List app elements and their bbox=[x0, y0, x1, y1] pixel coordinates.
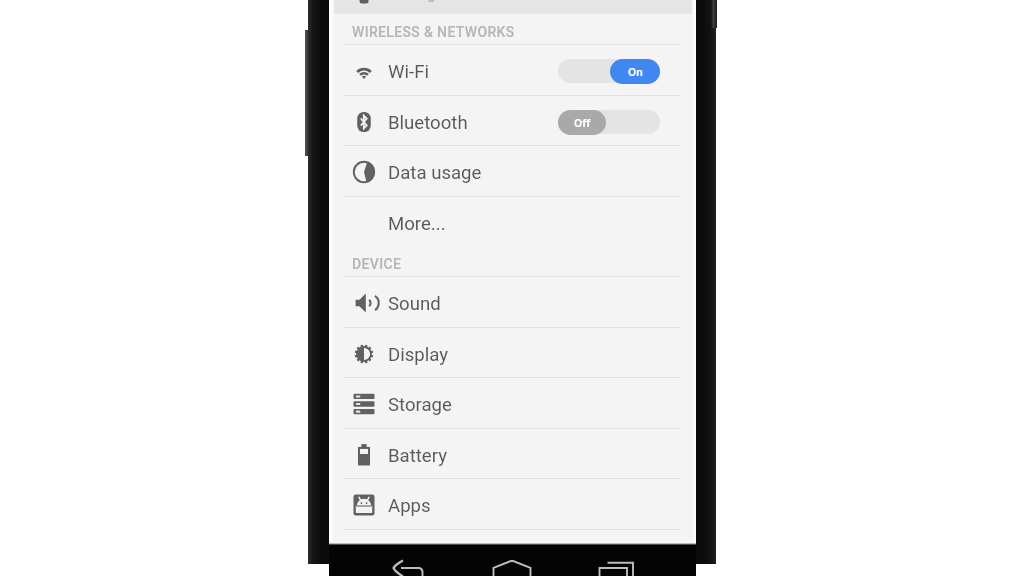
button[interactable]: Storage bbox=[329, 378, 696, 429]
button[interactable]: Wi-Fi bbox=[329, 45, 696, 96]
button[interactable]: Home bbox=[486, 545, 538, 576]
button[interactable]: Display bbox=[329, 328, 696, 379]
button[interactable]: Bluetooth bbox=[329, 96, 696, 147]
button[interactable]: Battery bbox=[329, 429, 696, 480]
button[interactable]: Back bbox=[383, 545, 435, 576]
button[interactable]: More... bbox=[329, 197, 696, 248]
staticText: Sound bbox=[388, 293, 441, 315]
staticText: Wi-Fi bbox=[388, 61, 429, 83]
staticText: More... bbox=[388, 213, 446, 235]
staticText: On bbox=[628, 65, 643, 79]
button[interactable]: Data usage bbox=[329, 146, 696, 197]
staticText: Off bbox=[574, 116, 591, 130]
staticText: Storage bbox=[388, 394, 452, 416]
staticText: Battery bbox=[388, 445, 447, 467]
button[interactable]: Apps bbox=[329, 479, 696, 530]
staticText: Bluetooth bbox=[388, 112, 468, 134]
staticText: Apps bbox=[388, 495, 431, 517]
staticText: DEVICE bbox=[352, 256, 402, 272]
staticText: Display bbox=[388, 344, 449, 366]
button[interactable]: Sound bbox=[329, 277, 696, 328]
button[interactable]: Bluetooth off bbox=[558, 109, 660, 135]
staticText: Data usage bbox=[388, 162, 482, 184]
staticText: WIRELESS & NETWORKS bbox=[352, 24, 515, 40]
button[interactable]: Wi-Fi on bbox=[558, 58, 660, 84]
button[interactable]: Recent apps bbox=[590, 545, 642, 576]
